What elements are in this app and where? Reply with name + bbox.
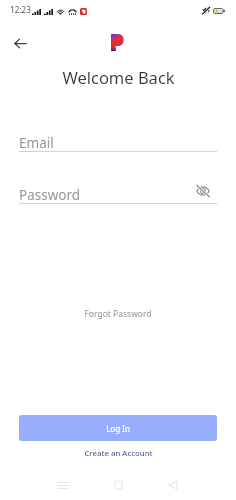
staticText: Create an Account [84, 448, 153, 459]
staticText: Forgot Password [84, 308, 152, 320]
button[interactable]: Back [8, 31, 33, 56]
button[interactable]: Create an Account [0, 445, 236, 461]
staticText: 12:23 [10, 4, 31, 15]
button[interactable]: Recent apps [52, 474, 74, 496]
staticText: Welcome Back [62, 66, 175, 88]
button[interactable]: Show password [193, 181, 213, 200]
staticText: Email [19, 134, 54, 152]
button[interactable]: Log In [19, 415, 217, 441]
staticText: Log In [106, 423, 130, 434]
button[interactable]: Forgot Password [0, 306, 236, 322]
button[interactable]: Home [107, 474, 129, 496]
staticText: Password [19, 186, 81, 204]
staticText: 52 [216, 8, 222, 14]
button[interactable]: Back [162, 474, 184, 496]
